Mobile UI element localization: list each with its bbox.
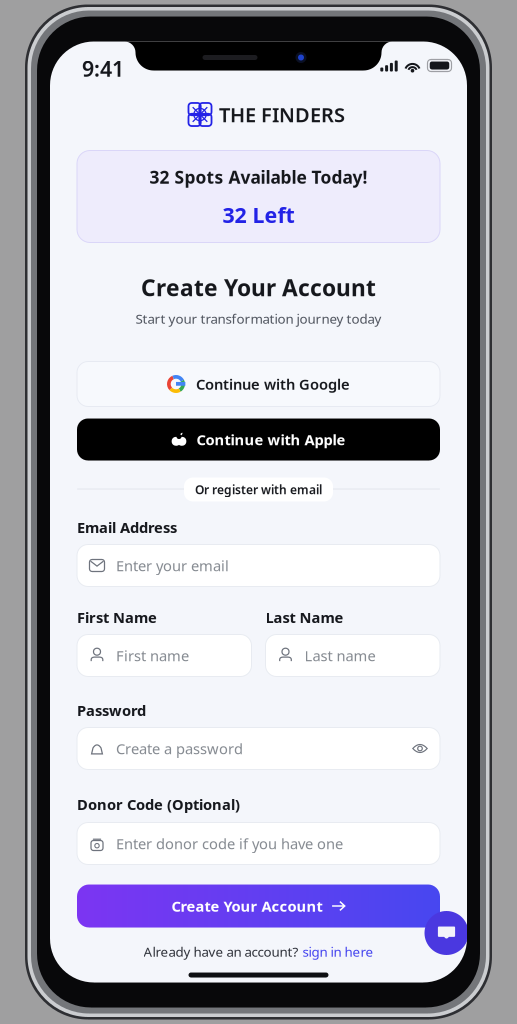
button[interactable]: Create Your Account — [77, 884, 440, 927]
staticText: Enter your email — [116, 556, 229, 575]
staticText: Last Name — [265, 607, 343, 627]
button[interactable]: Open chat support — [424, 910, 469, 955]
staticText: Continue with Apple — [196, 430, 345, 449]
staticText: Continue with Google — [196, 374, 350, 394]
staticText: Start your transformation journey today — [135, 310, 381, 327]
staticText: First Name — [77, 607, 157, 627]
staticText: 32 Left — [222, 200, 294, 229]
staticText: First name — [116, 646, 189, 665]
staticText: Email Address — [77, 517, 177, 537]
staticText: Create a password — [116, 739, 243, 758]
staticText: Password — [77, 700, 146, 720]
staticText: 32 Spots Available Today! — [149, 165, 367, 188]
staticText: Last name — [304, 646, 375, 665]
staticText: Donor Code (Optional) — [77, 794, 240, 814]
staticText: Enter donor code if you have one — [116, 834, 343, 853]
button[interactable]: sign in here — [302, 943, 373, 960]
staticText: Or register with email — [195, 481, 322, 497]
staticText: Create Your Account — [141, 272, 376, 302]
button[interactable]: Continue with Apple — [77, 418, 440, 460]
button[interactable]: Continue with Google — [77, 361, 440, 406]
staticText: Create Your Account — [171, 896, 322, 916]
staticText: THE FINDERS — [219, 101, 345, 128]
staticText: sign in here — [302, 943, 373, 960]
staticText: 9:41 — [82, 54, 124, 83]
staticText: Already have an account? — [143, 943, 298, 960]
